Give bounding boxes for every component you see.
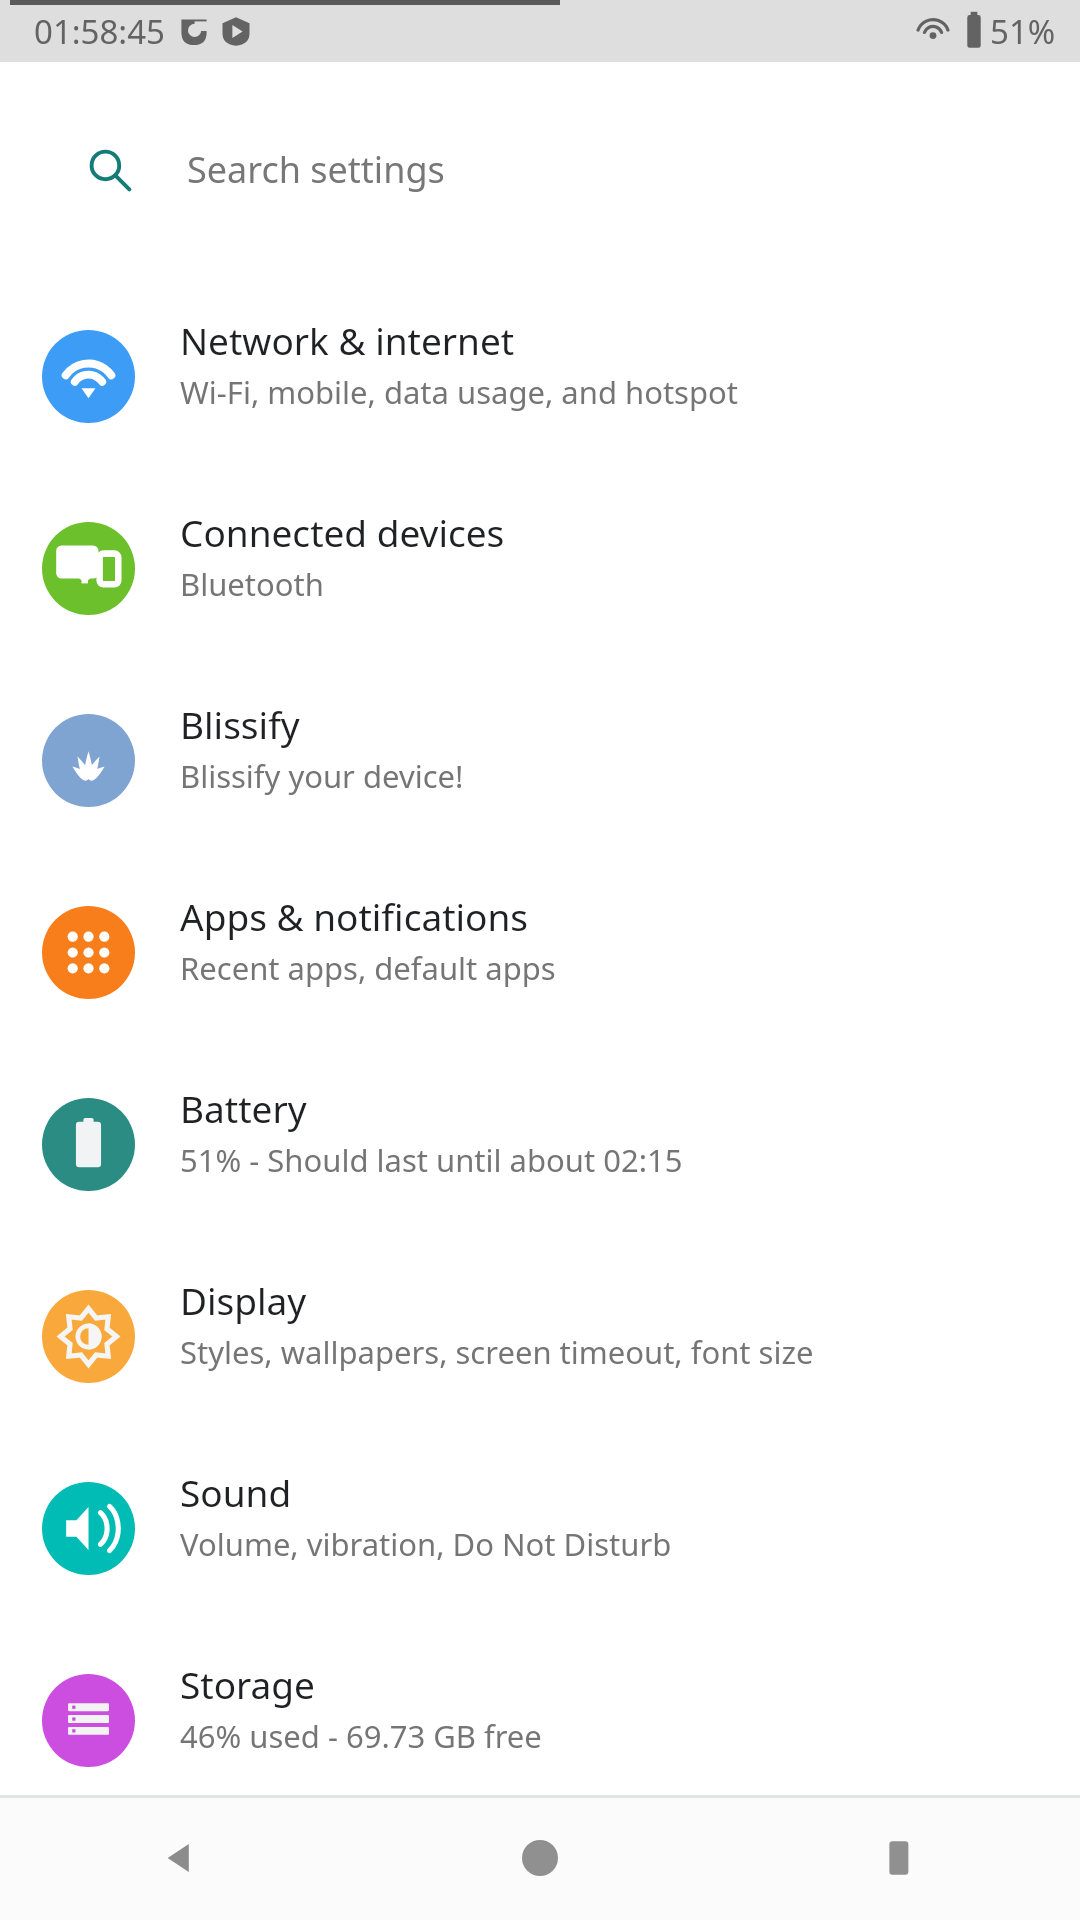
staticText: 51% - Should last until about 02:15	[180, 1139, 683, 1181]
button[interactable]: Display	[0, 1268, 1080, 1460]
staticText: Connected devices	[180, 507, 505, 557]
staticText: Battery	[180, 1083, 307, 1133]
button[interactable]: Sound	[0, 1460, 1080, 1652]
staticText: Apps & notifications	[180, 891, 529, 941]
button[interactable]: Back	[0, 1795, 360, 1920]
staticText: 46% used - 69.73 GB free	[180, 1715, 542, 1757]
button[interactable]: Home	[360, 1795, 720, 1920]
staticText: Recent apps, default apps	[180, 947, 556, 989]
button[interactable]: Connected devices	[0, 500, 1080, 692]
staticText: 01:58:45	[34, 9, 165, 54]
button[interactable]: Battery	[0, 1076, 1080, 1268]
staticText: Network & internet	[180, 315, 515, 365]
button[interactable]: Recents	[720, 1795, 1080, 1920]
button[interactable]: Apps & notifications	[0, 884, 1080, 1076]
staticText: Styles, wallpapers, screen timeout, font…	[180, 1331, 814, 1373]
button[interactable]: Search settings	[35, 107, 1045, 232]
staticText: Display	[180, 1275, 307, 1325]
button[interactable]: Blissify	[0, 692, 1080, 884]
button[interactable]: Storage	[0, 1652, 1080, 1844]
staticText: Privacy	[180, 1851, 304, 1901]
staticText: Storage	[180, 1659, 315, 1709]
staticText: Wi-Fi, mobile, data usage, and hotspot	[180, 371, 738, 413]
staticText: Blissify your device!	[180, 755, 464, 797]
button[interactable]: Network & internet	[0, 308, 1080, 500]
staticText: Blissify	[180, 699, 300, 749]
staticText: Bluetooth	[180, 563, 324, 605]
staticText: 51%	[990, 9, 1056, 54]
staticText: Volume, vibration, Do Not Disturb	[180, 1523, 672, 1565]
staticText: Search settings	[187, 145, 445, 194]
staticText: Sound	[180, 1467, 292, 1517]
button[interactable]: Privacy	[0, 1844, 1080, 1920]
